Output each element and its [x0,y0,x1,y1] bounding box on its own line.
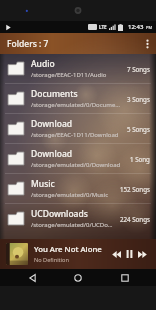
button[interactable]: Next [136,246,149,262]
button[interactable]: More options [139,33,156,54]
staticText: Download [31,118,73,130]
staticText: Audio [31,58,55,70]
button[interactable]: Music [0,174,156,203]
staticText: You Are Not Alone [34,244,102,255]
staticText: PM [146,25,153,30]
staticText: 3 Songs [127,95,150,103]
button[interactable]: Download [0,114,156,143]
button[interactable]: Audio [0,54,156,83]
staticText: 224 Songs [120,215,150,223]
staticText: Download [31,148,73,160]
button[interactable]: Home [63,269,93,286]
button[interactable]: Download [0,144,156,173]
staticText: /storage/emulated/0/Music [31,191,109,199]
staticText: 152 Songs [120,185,150,193]
staticText: Documents [31,88,78,100]
staticText: 1 Song [130,155,150,163]
staticText: Music [31,178,55,190]
button[interactable]: Documents [0,84,156,113]
staticText: /storage/emulated/0/Documents [31,101,123,109]
button[interactable]: UCDownloads [0,204,156,233]
staticText: LTE [99,24,107,30]
staticText: 12:43 [128,23,144,31]
staticText: UCDownloads [31,208,88,220]
button[interactable]: Previous [110,246,123,262]
button[interactable]: Recent apps [110,269,140,286]
staticText: Folders : 7 [7,38,49,50]
button[interactable]: You Are Not Alone [0,239,156,269]
staticText: /storage/emulated/0/UCDownloads [31,221,116,229]
staticText: /storage/emulated/0/Download [31,161,121,169]
button[interactable]: Back [17,269,47,286]
staticText: No Definition [34,256,69,264]
staticText: /storage/EEAC-1D11/Download [31,131,119,139]
staticText: /storage/EEAC-1D11/Audio [31,71,107,79]
button[interactable]: Pause [123,246,136,262]
staticText: 5 Songs [127,125,150,133]
staticText: 7 Songs [127,65,150,73]
